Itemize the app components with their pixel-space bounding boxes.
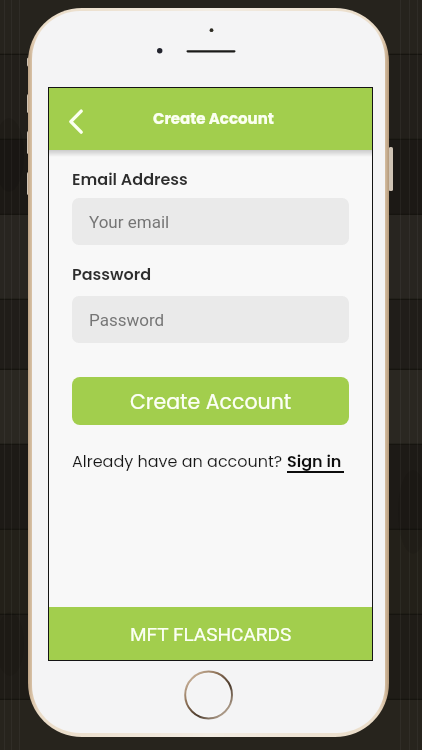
staticText: Password xyxy=(89,310,165,330)
staticText: Already have an account? xyxy=(72,450,287,472)
staticText: Create Account xyxy=(153,108,274,129)
staticText: Email Address xyxy=(72,168,188,190)
staticText: Password xyxy=(72,263,152,285)
button[interactable]: MFT FLASHCARDS xyxy=(49,607,372,660)
staticText: Sign in xyxy=(287,450,342,472)
button[interactable]: Password xyxy=(72,296,349,343)
button[interactable]: Your email xyxy=(72,198,349,245)
button[interactable]: Sign in xyxy=(287,450,344,472)
button[interactable]: Back xyxy=(53,97,97,141)
staticText: Create Account xyxy=(130,387,292,416)
button[interactable]: Create Account xyxy=(72,377,349,425)
staticText: Your email xyxy=(89,212,170,232)
staticText: MFT FLASHCARDS xyxy=(130,623,292,645)
